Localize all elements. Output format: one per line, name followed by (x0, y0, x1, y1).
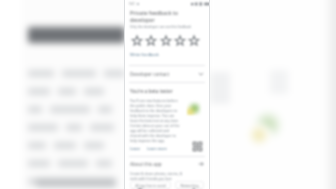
staticText: You'll see new features before the publi… (130, 98, 180, 143)
button[interactable]: Rate 5 stars (187, 34, 200, 47)
button[interactable]: #6 top free in social (130, 181, 171, 189)
staticText: 9:41 (129, 2, 135, 6)
button[interactable]: Rate 3 stars (159, 34, 172, 47)
staticText: Private feedback to developer (130, 9, 204, 23)
button[interactable]: Learn more (147, 146, 167, 151)
button[interactable]: Rate 1 stars (130, 34, 143, 47)
staticText: Developer contact (130, 71, 170, 77)
staticText: About this app (130, 161, 162, 167)
button[interactable]: Rate 2 stars (144, 34, 157, 47)
staticText: #6 top free in social (135, 183, 166, 187)
button[interactable]: Leave (130, 146, 140, 151)
button[interactable]: Rate 4 stars (173, 34, 186, 47)
button[interactable]: Write feedback (130, 51, 159, 58)
button[interactable]: Networking (175, 181, 204, 189)
button[interactable]: Developer contact (125, 66, 209, 82)
staticText: Only the developer can see this feedback (130, 25, 192, 29)
staticText: Learn more (147, 146, 167, 151)
button[interactable]: QR code (192, 141, 203, 152)
staticText: Networking (180, 183, 199, 187)
button[interactable]: About this app (125, 157, 209, 171)
staticText: Write feedback (130, 52, 159, 57)
staticText: Create & share photos, stories, & reels … (130, 171, 186, 181)
staticText: Leave (130, 146, 140, 151)
staticText: You're a beta tester (130, 88, 173, 94)
